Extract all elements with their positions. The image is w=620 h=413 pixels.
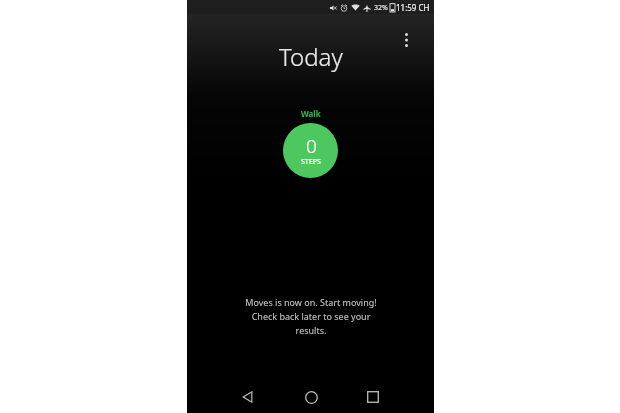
staticText: 0	[306, 133, 317, 159]
button[interactable]: Recent apps	[358, 382, 388, 412]
button[interactable]: 0	[283, 123, 338, 178]
button[interactable]: Home	[296, 382, 326, 412]
button[interactable]: More options	[394, 28, 418, 52]
staticText: Today	[279, 40, 343, 73]
button[interactable]: Back	[233, 382, 263, 412]
staticText: Walk	[301, 108, 321, 119]
staticText: STEPS	[301, 157, 321, 167]
staticText: 11:59 CH	[396, 2, 430, 13]
staticText: 32%	[374, 3, 388, 13]
staticText: Moves is now on. Start moving! Check bac…	[236, 296, 386, 337]
